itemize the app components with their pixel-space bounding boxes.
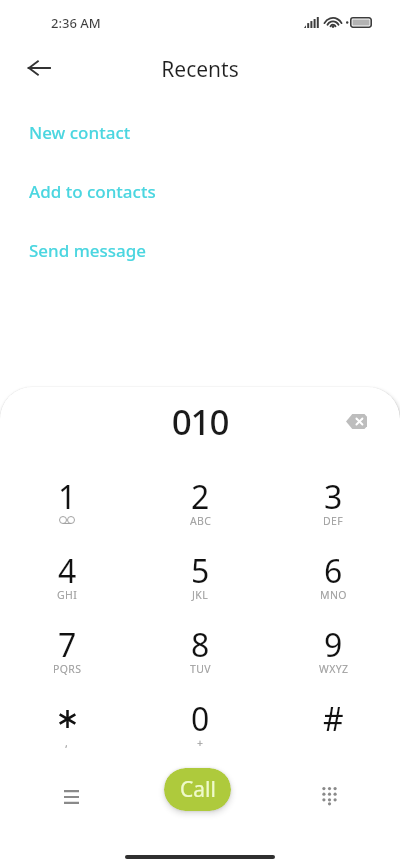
button[interactable]: Backspace — [336, 401, 377, 442]
staticText: 8 — [191, 623, 210, 667]
staticText: , — [65, 736, 69, 750]
button[interactable]: 3 — [267, 475, 400, 549]
staticText: 3 — [324, 475, 343, 519]
staticText: 010 — [0, 398, 400, 446]
button[interactable]: 7 — [0, 623, 134, 697]
button[interactable]: # — [267, 697, 400, 771]
staticText: 0 — [191, 697, 210, 741]
staticText: WXYZ — [319, 662, 349, 676]
staticText: Recents — [0, 55, 400, 84]
staticText: MNO — [320, 588, 347, 602]
staticText: 6 — [324, 549, 343, 593]
button[interactable]: 8 — [134, 623, 267, 697]
staticText: JKL — [192, 588, 209, 602]
staticText: 7 — [58, 623, 77, 667]
button[interactable]: , — [0, 697, 134, 771]
staticText: 2 — [191, 475, 210, 519]
button[interactable]: 0 — [134, 697, 267, 771]
staticText: TUV — [190, 662, 212, 676]
staticText: 4 — [58, 549, 77, 593]
button[interactable]: Send message — [0, 235, 400, 265]
staticText: 9 — [324, 623, 343, 667]
button[interactable]: 4 — [0, 549, 134, 623]
button[interactable]: 6 — [267, 549, 400, 623]
button[interactable]: Menu — [48, 774, 94, 820]
staticText: GHI — [57, 588, 78, 602]
button[interactable]: 9 — [267, 623, 400, 697]
button[interactable]: 1 — [0, 475, 134, 549]
staticText: ABC — [190, 514, 212, 528]
staticText: Call — [180, 775, 216, 804]
staticText: # — [323, 697, 344, 741]
staticText: + — [197, 736, 204, 750]
staticText: Send message — [29, 239, 147, 262]
button[interactable]: Back — [18, 47, 59, 88]
staticText: 5 — [191, 549, 210, 593]
staticText: New contact — [29, 121, 131, 144]
staticText: PQRS — [53, 662, 82, 676]
button[interactable]: New contact — [0, 117, 400, 147]
button[interactable]: Add to contacts — [0, 176, 400, 206]
button[interactable]: Call — [164, 768, 231, 811]
button[interactable]: 2 — [134, 475, 267, 549]
staticText: 1 — [58, 475, 77, 519]
staticText: Add to contacts — [29, 180, 156, 203]
staticText: 2:36 AM — [51, 14, 101, 32]
button[interactable]: 5 — [134, 549, 267, 623]
staticText: DEF — [323, 514, 344, 528]
button[interactable]: Dialpad — [306, 771, 352, 817]
